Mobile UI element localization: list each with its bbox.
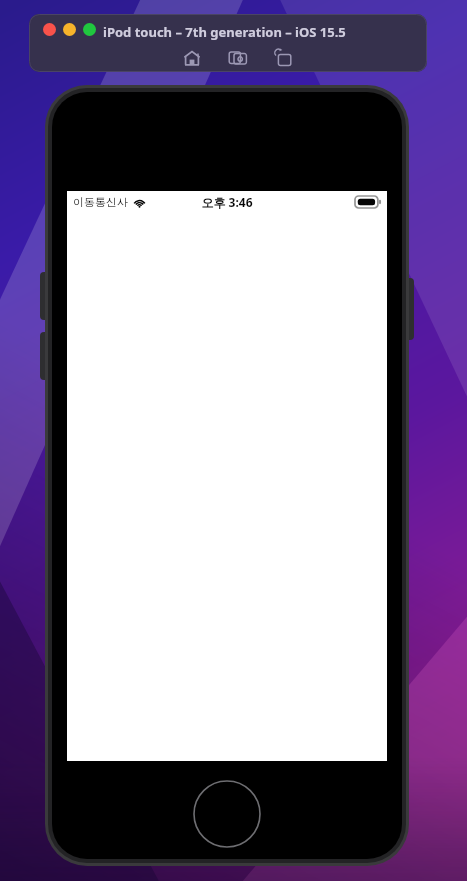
staticText: iPod touch – 7th generation – iOS 15.5: [103, 23, 346, 41]
staticText: 오후 3:46: [201, 194, 253, 210]
staticText: 이동통신사: [73, 195, 128, 209]
button[interactable]: Close: [43, 23, 56, 36]
button[interactable]: Home: [180, 46, 204, 70]
button[interactable]: Minimize: [63, 23, 76, 36]
button[interactable]: Screenshot: [226, 46, 250, 70]
button[interactable]: Rotate: [272, 46, 296, 70]
button[interactable]: Zoom: [83, 23, 96, 36]
